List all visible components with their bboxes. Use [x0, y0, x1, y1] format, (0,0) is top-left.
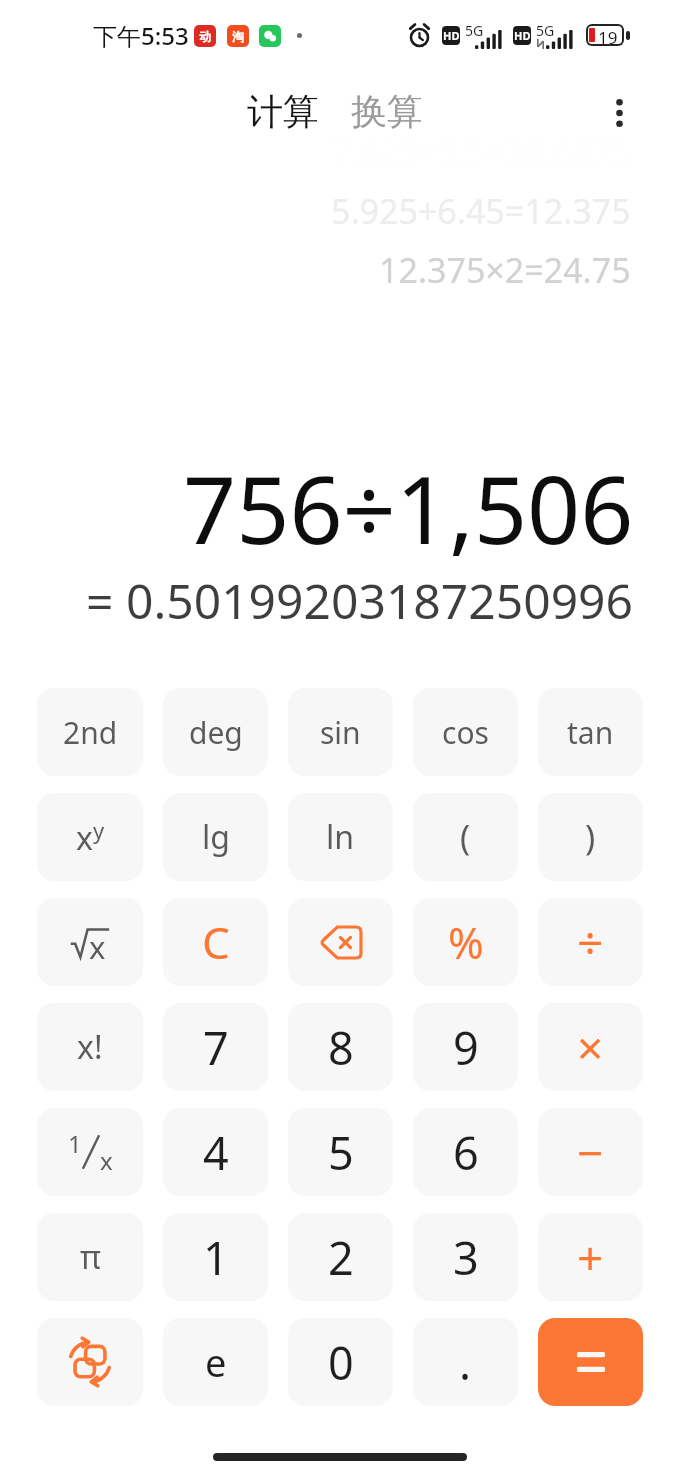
staticText: 1 — [203, 1227, 229, 1288]
button[interactable]: Unit converter — [37, 1318, 143, 1406]
staticText: x! — [77, 1025, 103, 1069]
button[interactable]: deg — [163, 688, 268, 776]
staticText: ( — [460, 814, 471, 860]
staticText: xy — [76, 815, 105, 860]
button[interactable]: 8 — [288, 1003, 393, 1091]
button[interactable]: 2nd — [37, 688, 143, 776]
button[interactable]: 4 — [163, 1108, 268, 1196]
staticText: 8 — [328, 1017, 354, 1078]
button[interactable]: x! — [37, 1003, 143, 1091]
staticText: sin — [320, 712, 361, 753]
staticText: 9 — [453, 1017, 479, 1078]
staticText: e — [205, 1336, 227, 1388]
button[interactable]: lg — [163, 793, 268, 881]
staticText: HD — [514, 28, 531, 43]
button[interactable]: Backspace — [288, 898, 393, 986]
staticText: % — [448, 913, 484, 972]
staticText: ln — [326, 815, 355, 859]
button[interactable]: . — [413, 1318, 518, 1406]
button[interactable]: 6 — [413, 1108, 518, 1196]
staticText: 5G — [465, 21, 484, 40]
staticText: C — [202, 912, 230, 972]
staticText: = 0.50199203187250996 — [86, 568, 634, 633]
staticText: HD — [443, 28, 460, 43]
button[interactable]: More options — [592, 86, 646, 140]
staticText: − — [577, 1121, 604, 1184]
button[interactable]: 7 — [163, 1003, 268, 1091]
button[interactable]: tan — [538, 688, 643, 776]
button[interactable]: π — [37, 1213, 143, 1301]
button[interactable]: Equals — [538, 1318, 643, 1406]
button[interactable]: e — [163, 1318, 268, 1406]
staticText: x — [100, 1144, 113, 1177]
staticText: 756÷1,506 — [183, 445, 634, 572]
button[interactable]: 计算 — [239, 79, 327, 144]
button[interactable]: Reciprocal — [37, 1108, 143, 1196]
staticText: 4 — [203, 1122, 229, 1183]
button[interactable]: ln — [288, 793, 393, 881]
button[interactable]: + — [538, 1213, 643, 1301]
staticText: 12.375×2=24.75 — [379, 247, 631, 293]
staticText: 2nd — [63, 712, 118, 753]
staticText: 7 — [203, 1017, 229, 1078]
staticText: 6 — [453, 1122, 479, 1183]
button[interactable]: xy — [37, 793, 143, 881]
staticText: 5 — [328, 1122, 354, 1183]
staticText: 19 — [598, 26, 618, 44]
staticText: cos — [442, 712, 489, 753]
staticText: 5.925+6.45=12.375 — [331, 188, 631, 234]
staticText: 计算 — [247, 89, 319, 134]
staticText: deg — [189, 712, 243, 753]
button[interactable]: ÷ — [538, 898, 643, 986]
staticText: × — [577, 1016, 604, 1079]
staticText: 下午5:53 — [93, 19, 189, 52]
staticText: ) — [585, 814, 596, 860]
staticText: 动 — [199, 29, 211, 44]
staticText: tan — [567, 712, 614, 753]
button[interactable]: C — [163, 898, 268, 986]
button[interactable]: 1 — [163, 1213, 268, 1301]
button[interactable]: 2 — [288, 1213, 393, 1301]
staticText: x — [89, 926, 106, 962]
button[interactable]: ) — [538, 793, 643, 881]
button[interactable]: 换算 — [343, 79, 431, 144]
staticText: 5G — [536, 21, 555, 40]
staticText: + — [577, 1226, 604, 1289]
button[interactable]: 5 — [288, 1108, 393, 1196]
staticText: 2 — [328, 1227, 354, 1288]
button[interactable]: Square root — [37, 898, 143, 986]
button[interactable]: 9 — [413, 1003, 518, 1091]
staticText: ÷ — [577, 911, 604, 974]
staticText: 0 — [328, 1332, 354, 1393]
button[interactable]: × — [538, 1003, 643, 1091]
button[interactable]: − — [538, 1108, 643, 1196]
button[interactable]: ( — [413, 793, 518, 881]
button[interactable]: sin — [288, 688, 393, 776]
staticText: . — [459, 1332, 472, 1393]
button[interactable]: cos — [413, 688, 518, 776]
button[interactable]: 0 — [288, 1318, 393, 1406]
button[interactable]: 3 — [413, 1213, 518, 1301]
staticText: 1 — [68, 1127, 82, 1160]
button[interactable]: % — [413, 898, 518, 986]
staticText: 淘 — [232, 29, 244, 44]
staticText: π — [80, 1235, 101, 1279]
staticText: 3 — [453, 1227, 479, 1288]
staticText: lg — [202, 815, 230, 859]
staticText: 换算 — [351, 89, 423, 134]
